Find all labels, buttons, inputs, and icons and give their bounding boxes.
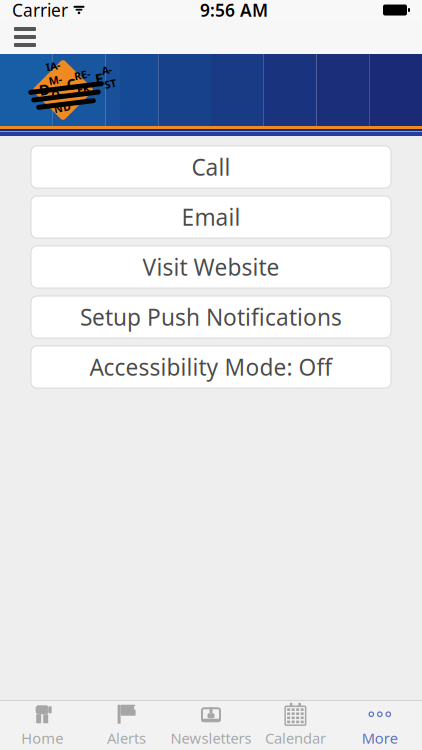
button[interactable]: Alerts <box>84 701 169 750</box>
staticText: Newsletters <box>170 728 251 748</box>
staticText: IAMOND <box>49 55 66 111</box>
staticText: C <box>66 73 75 93</box>
button[interactable]: Home <box>0 701 84 750</box>
staticText: Setup Push Notifications <box>80 302 342 332</box>
staticText: More <box>362 728 398 748</box>
staticText: E <box>91 73 103 93</box>
staticText: Alerts <box>107 728 146 748</box>
staticText: AST <box>103 69 115 97</box>
button[interactable]: Call <box>31 146 391 188</box>
staticText: Accessibility Mode: Off <box>89 352 332 382</box>
button[interactable]: Accessibility Mode: Off <box>31 346 391 388</box>
staticText: D <box>38 73 49 93</box>
button[interactable]: Menu <box>0 19 50 55</box>
button[interactable]: More <box>338 701 422 750</box>
button[interactable]: Email <box>31 196 391 238</box>
button[interactable]: Visit Website <box>31 246 391 288</box>
staticText: Home <box>21 728 63 748</box>
staticText: REEK <box>75 69 91 97</box>
staticText: Email <box>181 202 240 232</box>
staticText: Carrier <box>12 0 68 21</box>
staticText: 9:56 AM <box>200 0 268 21</box>
staticText: Visit Website <box>142 252 279 282</box>
button[interactable]: Newsletters <box>169 701 253 750</box>
button[interactable]: Calendar <box>253 701 338 750</box>
staticText: Calendar <box>265 728 326 748</box>
staticText: Call <box>191 152 230 182</box>
button[interactable]: Setup Push Notifications <box>31 296 391 338</box>
